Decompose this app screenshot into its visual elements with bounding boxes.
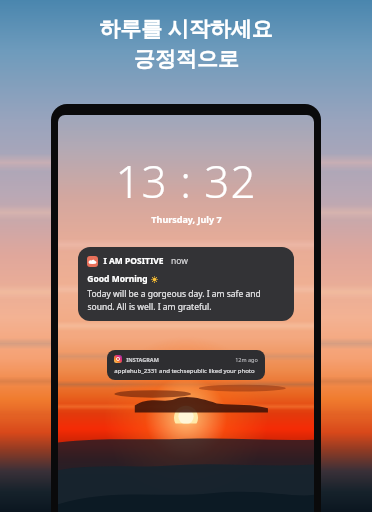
staticText: Thursday, July 7 [151, 213, 222, 225]
staticText: sound. All is well. I am grateful. [87, 301, 212, 313]
staticText: INSTAGRAM [126, 356, 159, 363]
staticText: 긍정적으로 [134, 46, 239, 72]
staticText: I AM POSITIVE [103, 255, 164, 267]
staticText: Today will be a gorgeous day. I am safe … [87, 288, 261, 300]
staticText: 13 : 32 [115, 151, 257, 211]
other: Instagram [114, 355, 122, 363]
staticText: Good Morning [87, 273, 148, 285]
staticText: now [171, 255, 188, 267]
button[interactable]: I Am Positive app [78, 247, 294, 321]
staticText: 하루를 시작하세요 [99, 14, 273, 43]
staticText: 12m ago [235, 356, 258, 363]
other: Sun [151, 276, 158, 283]
other: I Am Positive app [87, 256, 98, 267]
button[interactable]: Instagram [107, 350, 265, 380]
staticText: applehub_2331 and techsepublic liked you… [114, 367, 255, 375]
